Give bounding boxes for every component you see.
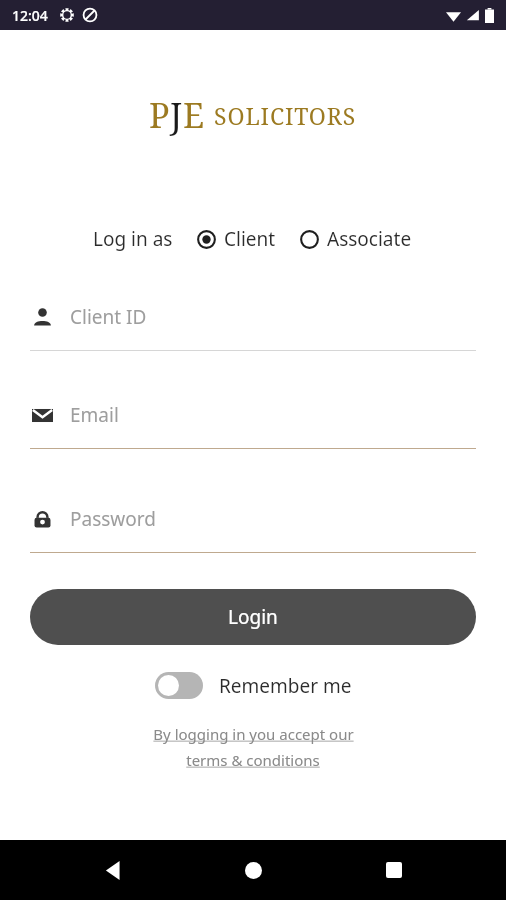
staticText: By logging in you accept our [153, 724, 354, 744]
staticText: 12:04 [12, 6, 48, 25]
button[interactable]: Remember me [153, 669, 354, 702]
staticText: Client [224, 226, 276, 252]
button[interactable]: Client ID [30, 304, 476, 351]
staticText: terms & conditions [186, 750, 320, 770]
button[interactable]: Login [30, 589, 476, 645]
button[interactable]: Home [225, 842, 281, 898]
staticText: J [170, 92, 183, 138]
staticText: P [149, 92, 170, 138]
button[interactable]: Email [30, 402, 476, 449]
staticText: Log in as [93, 226, 173, 252]
button[interactable]: Client [195, 222, 278, 256]
staticText: Password [70, 506, 156, 532]
button[interactable]: Recent apps [366, 842, 422, 898]
button[interactable]: By logging in you accept our [0, 724, 506, 770]
staticText: Remember me [219, 673, 352, 699]
staticText: Associate [327, 226, 412, 252]
staticText: Login [228, 604, 278, 630]
button[interactable]: Back [85, 842, 141, 898]
button[interactable]: Associate [298, 222, 414, 256]
staticText: SOLICITORS [214, 100, 357, 131]
staticText: Email [70, 402, 119, 428]
button[interactable]: Password [30, 506, 476, 553]
staticText: Client ID [70, 304, 147, 330]
staticText: E [183, 92, 205, 138]
